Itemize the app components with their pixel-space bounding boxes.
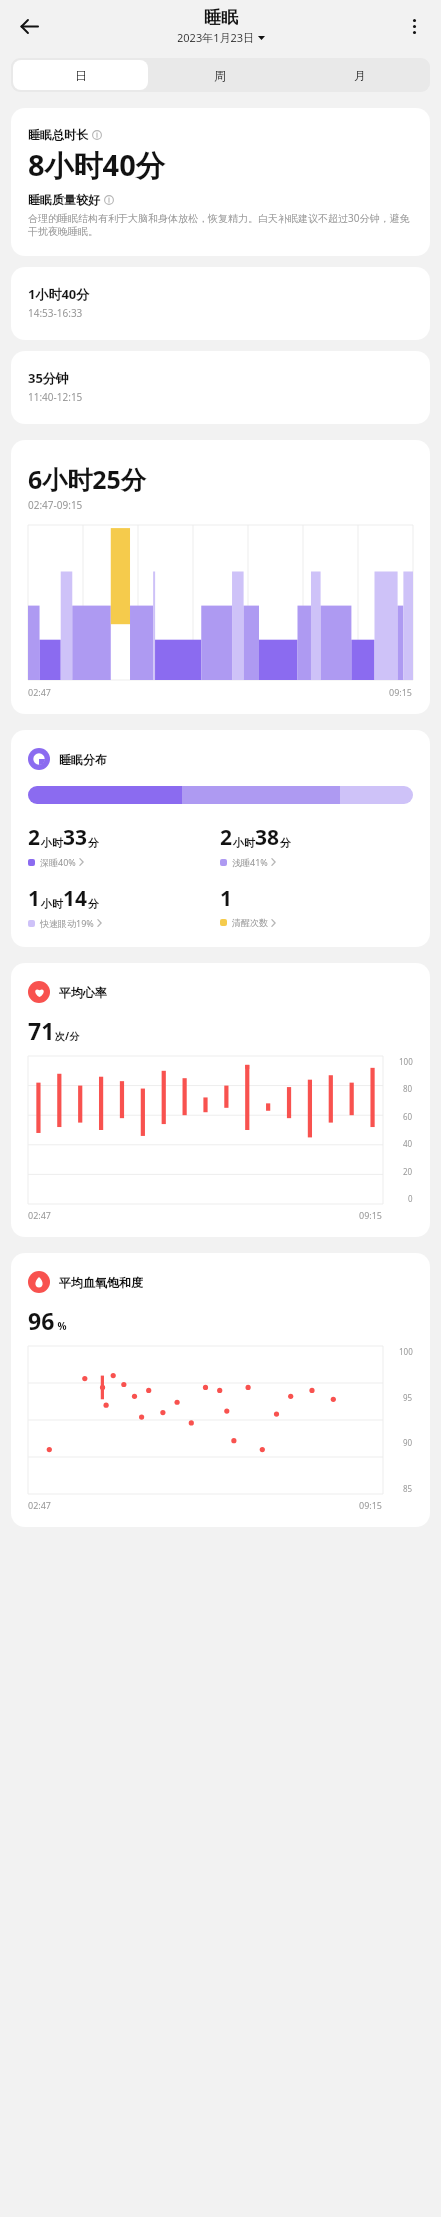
button[interactable]: 1 [220,884,413,928]
staticText: 1 [220,884,233,913]
button[interactable]: 1 [28,884,220,929]
staticText: 09:15 [389,686,413,698]
staticText: 11:40-12:15 [28,390,83,404]
staticText: 6小时25分 [28,462,146,496]
button[interactable]: Back [10,7,48,45]
staticText: 睡眠总时长 [28,127,88,142]
staticText: 38 [255,823,280,852]
staticText: 14 [63,884,88,913]
staticText: 8小时40分 [28,145,165,185]
staticText: 71 [28,1015,55,1046]
staticText: 20 [403,1166,413,1177]
staticText: 睡眠分布 [59,752,107,767]
button[interactable]: 2 [28,823,220,868]
staticText: 100 [399,1056,413,1067]
staticText: 分 [280,836,291,850]
staticText: 02:47 [28,1209,52,1221]
staticText: 清醒次数 [232,917,268,928]
staticText: 周 [214,68,226,83]
button[interactable]: 月 [292,60,428,90]
staticText: 平均血氧饱和度 [59,1275,143,1290]
staticText: 35分钟 [28,369,69,387]
staticText: 分 [88,897,99,911]
staticText: 0 [408,1193,413,1204]
staticText: 100 [399,1346,413,1357]
button[interactable]: 2 [220,823,413,868]
button[interactable]: 平均心率 [11,963,430,1237]
button[interactable]: 2023年1月23日 [177,30,265,45]
staticText: 合理的睡眠结构有利于大脑和身体放松，恢复精力。白天补眠建议不超过30分钟，避免干… [28,211,413,238]
button[interactable]: 6小时25分 [11,440,430,714]
staticText: 2 [220,823,233,852]
staticText: 浅睡41% [232,856,268,868]
staticText: 日 [75,68,87,83]
staticText: 60 [403,1111,413,1122]
button[interactable]: 睡眠总时长 [11,108,430,256]
staticText: 14:53-16:33 [28,306,83,320]
staticText: 95 [403,1392,413,1403]
staticText: 2 [28,823,41,852]
staticText: 小时 [41,836,63,850]
button[interactable]: 日 [13,60,148,90]
staticText: 02:47 [28,1499,52,1511]
staticText: 96 [28,1305,55,1336]
staticText: 40 [403,1138,413,1149]
staticText: 33 [63,823,88,852]
staticText: 1小时40分 [28,285,90,303]
button[interactable]: 35分钟 [11,351,100,424]
staticText: 02:47 [28,686,52,698]
staticText: 80 [403,1083,413,1094]
staticText: 小时 [41,897,63,911]
staticText: 深睡40% [40,856,76,868]
staticText: % [55,1319,67,1333]
staticText: 睡眠质量较好 [28,192,100,207]
staticText: 睡眠 [204,7,238,28]
staticText: 月 [354,68,366,83]
button[interactable]: More options [397,9,431,43]
staticText: 平均心率 [59,985,107,1000]
button[interactable]: 1小时40分 [11,267,107,340]
staticText: 分 [88,836,99,850]
button[interactable]: 平均血氧饱和度 [11,1253,430,1527]
staticText: 快速眼动19% [40,917,94,929]
staticText: 02:47-09:15 [28,498,83,512]
staticText: 09:15 [359,1499,383,1511]
staticText: 90 [403,1437,413,1448]
staticText: 2023年1月23日 [177,30,255,45]
button[interactable]: 睡眠分布 [28,748,413,770]
staticText: 次/分 [55,1029,80,1043]
staticText: 09:15 [359,1209,383,1221]
button[interactable]: 周 [152,60,288,90]
staticText: 小时 [233,836,255,850]
staticText: 1 [28,884,41,913]
staticText: 85 [403,1483,413,1494]
